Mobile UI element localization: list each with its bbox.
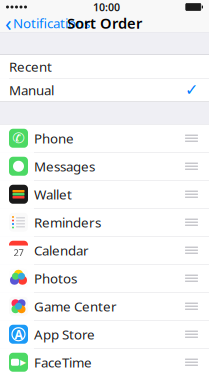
staticText: 10:00 [93,0,120,14]
button[interactable]: ‹ [0,9,90,37]
button[interactable]: Messages [0,152,209,180]
staticText: Recent [9,58,52,75]
staticText: FaceTime [34,353,92,371]
staticText: Photos [34,269,77,287]
button[interactable]: Manual [0,78,209,102]
staticText: Game Center [34,297,117,315]
staticText: ▶ [20,358,26,367]
button[interactable]: Recent [0,55,209,78]
staticText: ‹ [5,9,12,37]
button[interactable]: ✆ [0,124,209,152]
staticText: ✆ [12,130,24,146]
staticText: Sort Order [67,13,142,33]
staticText: Phone [34,129,74,147]
staticText: Wallet [34,185,72,203]
button[interactable]: 27 [0,236,209,264]
button[interactable]: Reminders [0,208,209,236]
button[interactable]: A [0,320,209,348]
staticText: A [14,326,22,342]
staticText: Messages [34,157,95,175]
staticText: Manual [9,81,54,99]
button[interactable]: Wallet [0,180,209,208]
button[interactable]: ▶ [0,348,209,372]
button[interactable]: Photos [0,264,209,292]
staticText: ✓ [185,81,198,99]
staticText: Notifications [13,14,90,32]
staticText: Calendar [34,241,89,259]
staticText: 27 [13,247,23,259]
staticText: App Store [34,325,95,343]
staticText: Reminders [34,213,101,231]
button[interactable]: Game Center [0,292,209,320]
